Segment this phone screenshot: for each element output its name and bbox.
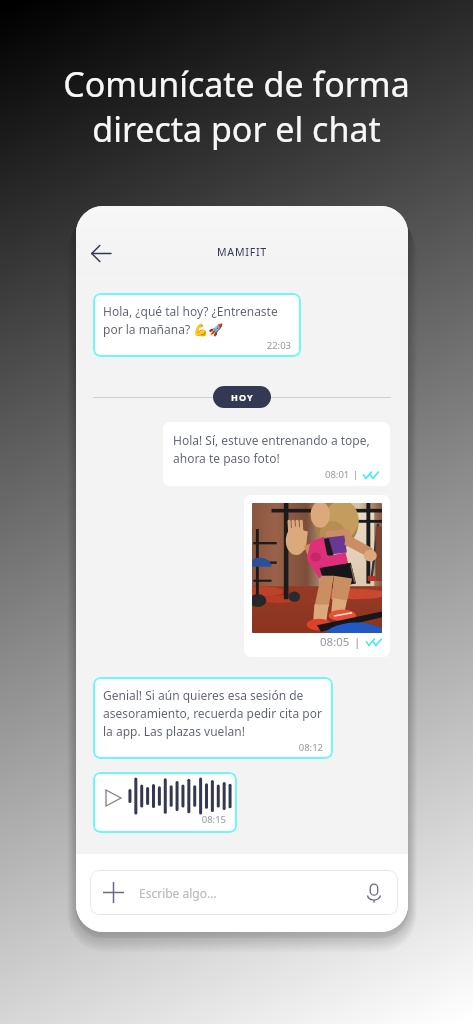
staticText: 08:12 (103, 741, 323, 754)
button[interactable]: Voice message (363, 882, 385, 904)
staticText: 22:03 (103, 339, 291, 352)
button[interactable]: Hola! Sí, estuve entrenando a tope, ahor… (163, 422, 390, 486)
button[interactable]: 08:05 (244, 495, 390, 657)
button[interactable]: Back (79, 231, 123, 275)
staticText: | (353, 468, 359, 481)
button[interactable]: HOY (213, 386, 271, 408)
staticText: MAMIFIT (76, 245, 408, 259)
staticText: Comunícate de forma directa por el chat (0, 61, 473, 152)
staticText: Hola! Sí, estuve entrenando a tope, ahor… (173, 432, 370, 466)
staticText: Hola, ¿qué tal hoy? ¿Entrenaste por la m… (103, 303, 278, 337)
staticText: 08:15 (93, 813, 226, 826)
button[interactable]: Genial! Si aún quieres esa sesión de ase… (93, 677, 333, 759)
staticText: HOY (231, 391, 254, 403)
staticText: 08:01 (325, 468, 350, 481)
button[interactable]: Hola, ¿qué tal hoy? ¿Entrenaste por la m… (93, 293, 301, 357)
staticText: Escribe algo... (139, 885, 217, 901)
staticText: 08:05 (320, 634, 350, 650)
button[interactable]: Escribe algo... (90, 870, 398, 915)
staticText: | (354, 634, 361, 650)
staticText: Genial! Si aún quieres esa sesión de ase… (103, 687, 322, 739)
button[interactable]: 08:15 (93, 772, 237, 833)
